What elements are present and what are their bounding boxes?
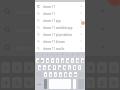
staticText: 8 — [89, 64, 93, 72]
button[interactable]: u — [66, 58, 69, 63]
button[interactable]: m — [74, 72, 77, 77]
button[interactable]: . — [73, 79, 76, 89]
staticText: 5 — [15, 79, 19, 87]
staticText: dream 11 ki team — [43, 40, 80, 44]
button[interactable]: r — [51, 58, 54, 63]
staticText: 3 — [47, 53, 49, 56]
button[interactable]: t — [56, 58, 59, 63]
staticText: k — [74, 66, 76, 70]
staticText: 6 — [27, 79, 31, 87]
button[interactable]: Emoji — [44, 79, 47, 89]
staticText: ?123 — [37, 83, 42, 86]
staticText: v — [60, 73, 62, 77]
button[interactable]: g — [58, 65, 61, 70]
staticText: 0 — [82, 53, 84, 56]
staticText: n — [70, 73, 72, 77]
staticText: x — [50, 73, 52, 77]
staticText: w — [41, 59, 44, 63]
button[interactable]: s — [43, 65, 46, 70]
button[interactable]: p — [81, 58, 84, 63]
button[interactable]: dream 11 results — [35, 45, 85, 52]
staticText: 2 — [100, 79, 104, 87]
staticText: i — [72, 59, 73, 63]
button[interactable]: b — [64, 72, 67, 77]
button[interactable]: y — [61, 58, 64, 63]
button[interactable]: k — [73, 65, 76, 70]
button[interactable]: q — [36, 58, 39, 63]
staticText: 9 — [77, 53, 79, 56]
staticText: p — [82, 59, 84, 63]
staticText: b — [65, 73, 67, 77]
button[interactable]: dream 11 app — [35, 17, 85, 24]
staticText: y — [62, 59, 64, 63]
button[interactable]: f — [53, 65, 56, 70]
button[interactable]: e — [46, 58, 49, 63]
staticText: a — [39, 66, 41, 70]
staticText: 9 — [100, 64, 104, 72]
button[interactable]: x — [49, 72, 52, 77]
button[interactable]: o — [76, 58, 79, 63]
staticText: m — [74, 73, 77, 77]
staticText: dream 11 — [43, 12, 80, 16]
staticText: g — [59, 66, 61, 70]
staticText: 6 — [62, 53, 64, 56]
button[interactable]: w — [41, 58, 44, 63]
button[interactable]: dream 11 — [35, 10, 85, 17]
staticText: c — [55, 73, 57, 77]
button[interactable]: v — [59, 72, 62, 77]
button[interactable]: l — [78, 65, 81, 70]
button[interactable]: d — [48, 65, 51, 70]
button[interactable] — [85, 2, 120, 20]
button[interactable]: j — [68, 65, 71, 70]
button[interactable]: a — [38, 65, 41, 70]
button[interactable]: n — [69, 72, 72, 77]
staticText: l — [79, 66, 80, 70]
staticText: dream 11 app — [43, 19, 80, 23]
button[interactable]: dream 11 available app — [35, 24, 85, 31]
button[interactable]: h — [63, 65, 66, 70]
staticText: 2 — [15, 64, 19, 72]
staticText: q — [37, 59, 39, 63]
button[interactable]: dream 11 — [35, 3, 85, 10]
button[interactable]: z — [44, 72, 47, 77]
button[interactable]: dream 11 ki team — [35, 38, 85, 45]
staticText: j — [69, 66, 70, 70]
staticText: 1 — [37, 53, 39, 56]
staticText: dream 11 ipl prediction — [43, 33, 80, 37]
button[interactable]: dream 11 ipl prediction — [35, 31, 85, 38]
staticText: 3 — [27, 64, 31, 72]
button[interactable]: c — [54, 72, 57, 77]
staticText: e — [47, 59, 49, 63]
staticText: 4 — [4, 79, 8, 87]
button[interactable]: i — [71, 58, 74, 63]
staticText: 2 — [42, 53, 44, 56]
staticText: o — [77, 59, 79, 63]
button[interactable]: ?123 — [36, 79, 42, 89]
staticText: 8 — [72, 53, 74, 56]
